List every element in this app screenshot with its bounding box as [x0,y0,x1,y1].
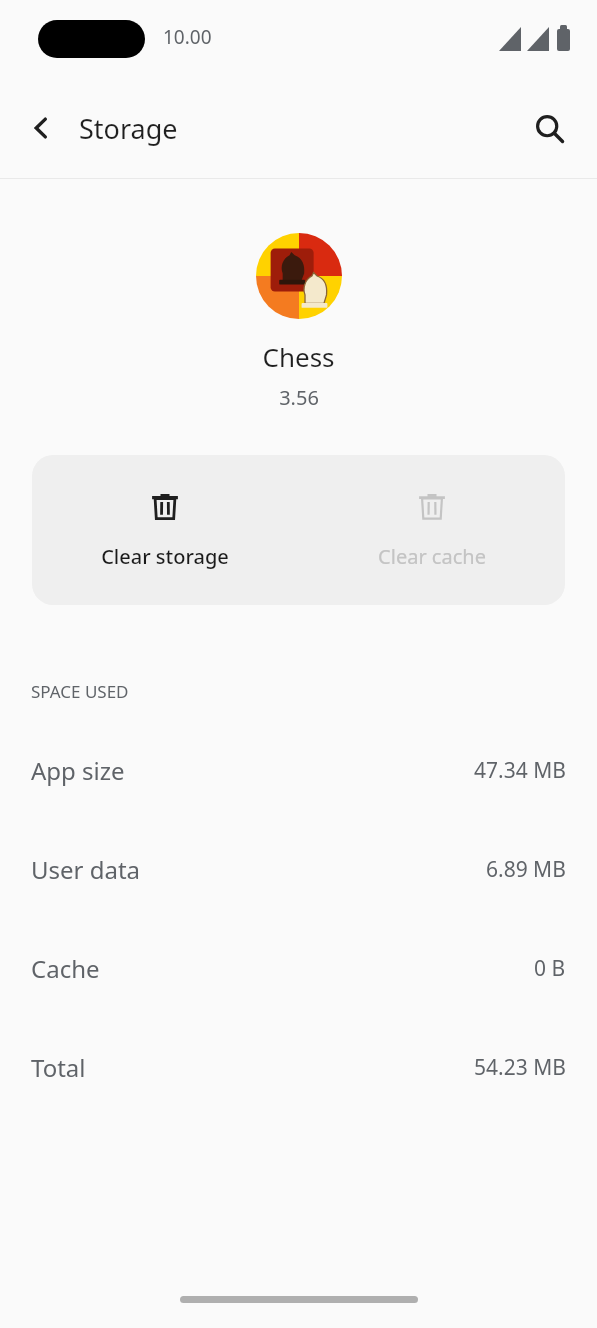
staticText: Total [31,1051,86,1084]
button[interactable]: Cache [0,919,597,1018]
button[interactable]: App size [0,721,597,820]
staticText: Clear cache [378,543,486,570]
button[interactable]: Search [523,102,575,154]
staticText: Cache [31,952,100,985]
staticText: 0 B [534,954,566,983]
staticText: 47.34 MB [474,756,566,785]
staticText: Clear storage [101,543,229,570]
button[interactable]: Clear cache [298,455,565,605]
staticText: 6.89 MB [486,855,566,884]
staticText: User data [31,853,141,886]
staticText: 54.23 MB [474,1053,566,1082]
staticText: 10.00 [163,24,212,50]
staticText: 3.56 [279,384,319,411]
staticText: App size [31,754,125,787]
button[interactable]: Clear storage [32,455,298,605]
staticText: Storage [79,110,178,147]
button[interactable]: Total [0,1018,597,1117]
staticText: Chess [262,339,335,374]
button[interactable]: User data [0,820,597,919]
staticText: SPACE USED [31,680,129,703]
button[interactable]: Back [15,102,67,154]
